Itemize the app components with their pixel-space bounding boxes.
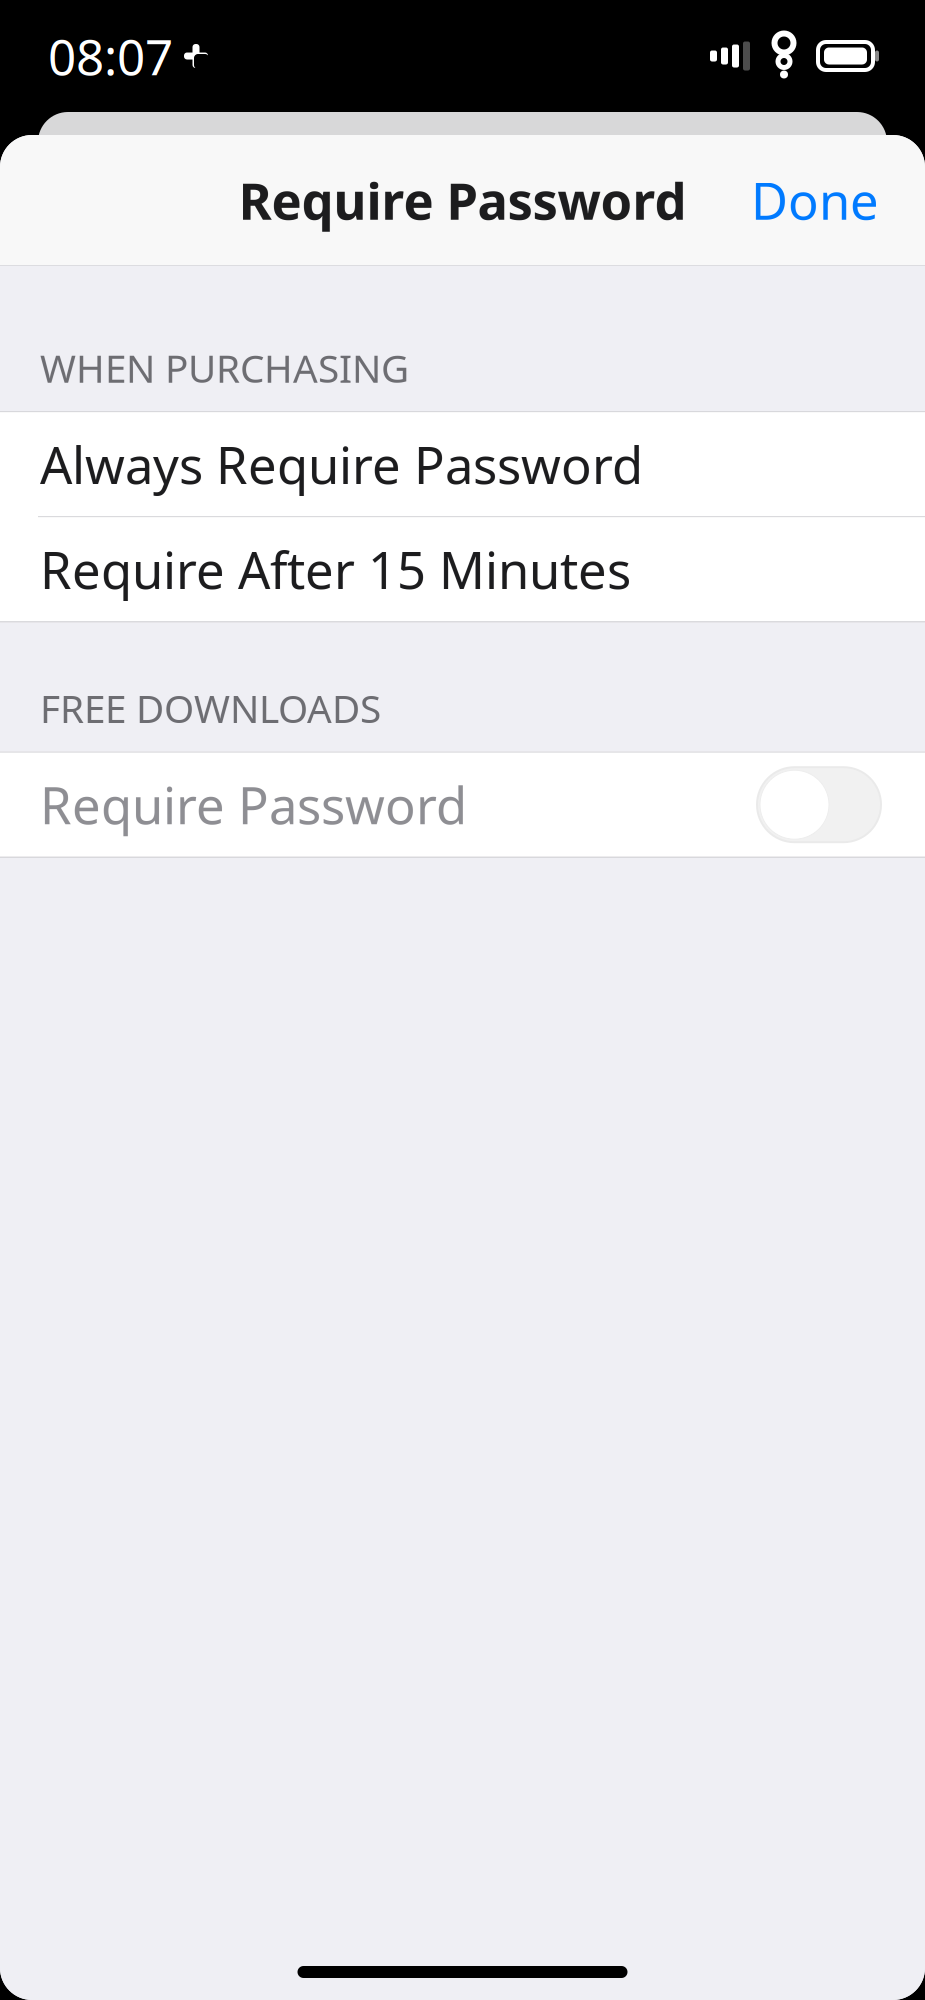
button[interactable]: Done bbox=[727, 150, 903, 250]
staticText: 08:07 bbox=[48, 23, 173, 89]
button[interactable]: Require After 15 Minutes bbox=[0, 517, 925, 621]
button[interactable]: Always Require Password bbox=[0, 412, 925, 516]
staticText: Require After 15 Minutes bbox=[40, 536, 631, 603]
staticText: Done bbox=[751, 166, 879, 234]
staticText: Require Password bbox=[40, 771, 467, 838]
staticText: WHEN PURCHASING bbox=[40, 342, 409, 393]
button[interactable]: Require Password for free downloads bbox=[0, 753, 925, 857]
staticText: Require Password bbox=[238, 166, 686, 234]
staticText: FREE DOWNLOADS bbox=[40, 682, 381, 734]
staticText: Always Require Password bbox=[40, 431, 643, 498]
